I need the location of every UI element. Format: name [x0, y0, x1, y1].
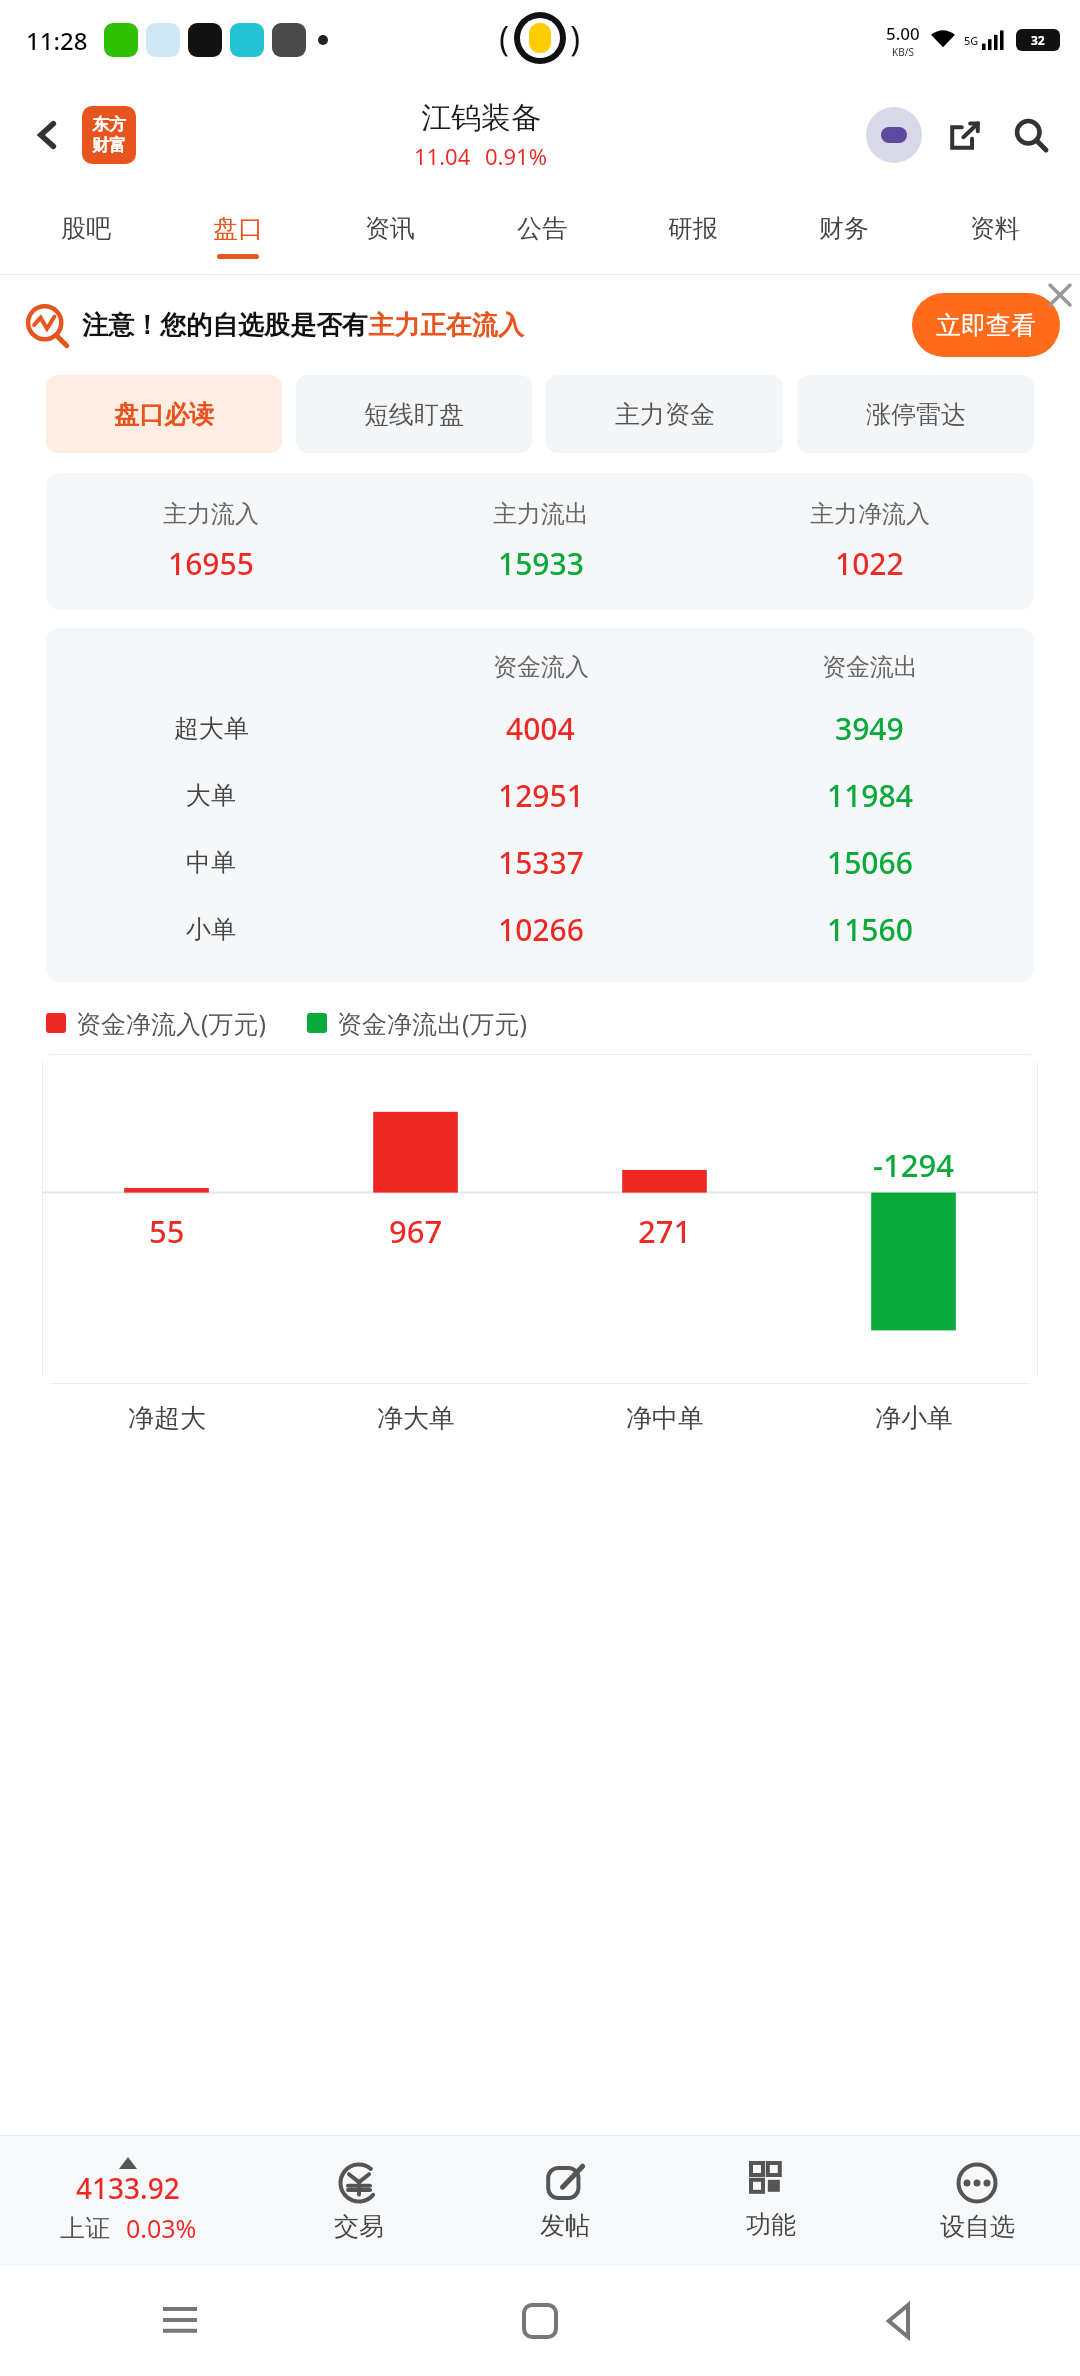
staticText: 271: [638, 1210, 692, 1252]
staticText: 5.00: [886, 22, 920, 45]
staticText: 净大单: [377, 1402, 455, 1435]
staticText: 发帖: [540, 2210, 590, 2241]
button[interactable]: Home: [360, 2266, 720, 2376]
staticText: 江钨装备: [421, 99, 541, 137]
staticText: 10266: [498, 909, 584, 950]
button[interactable]: 发帖: [462, 2136, 668, 2266]
staticText: 盘口: [213, 213, 263, 244]
staticText: 净小单: [875, 1402, 953, 1435]
staticText: 财富: [92, 135, 126, 156]
button[interactable]: 资金流入: [46, 652, 1034, 958]
staticText: 主力正在流入: [368, 309, 524, 342]
button[interactable]: 研报: [617, 190, 768, 274]
button[interactable]: Avatar: [866, 107, 922, 163]
staticText: 3949: [835, 708, 904, 749]
staticText: 主力流出: [493, 499, 589, 529]
staticText: 967: [389, 1210, 443, 1252]
staticText: 交易: [334, 2211, 384, 2242]
staticText: 立即查看: [936, 310, 1036, 341]
staticText: 小单: [186, 914, 236, 945]
staticText: 15933: [498, 543, 584, 584]
staticText: 上证: [60, 2213, 110, 2244]
button[interactable]: Search: [1006, 110, 1056, 160]
button[interactable]: Share: [940, 110, 990, 160]
button[interactable]: Back: [22, 109, 74, 161]
staticText: 超大单: [174, 713, 249, 744]
button[interactable]: Close: [1040, 275, 1080, 315]
staticText: 1022: [835, 543, 904, 584]
staticText: 11:28: [26, 24, 88, 57]
button[interactable]: 资讯: [314, 190, 466, 274]
staticText: 资金净流入(万元): [76, 1006, 267, 1040]
staticText: 资金净流出(万元): [337, 1006, 528, 1040]
button[interactable]: Recents: [0, 2266, 360, 2376]
button[interactable]: 股吧: [10, 190, 162, 274]
staticText: 研报: [668, 213, 718, 244]
button[interactable]: 功能: [668, 2136, 874, 2266]
staticText: 12951: [498, 775, 584, 816]
staticText: ): [570, 15, 581, 61]
staticText: KB/S: [892, 45, 914, 59]
staticText: 资料: [970, 213, 1020, 244]
staticText: 0.03%: [126, 2211, 197, 2245]
staticText: 净超大: [128, 1402, 206, 1435]
button[interactable]: 4133.92: [0, 2136, 256, 2266]
staticText: 股吧: [61, 213, 111, 244]
staticText: 公告: [517, 213, 567, 244]
button[interactable]: 财务: [768, 190, 919, 274]
staticText: 中单: [186, 847, 236, 878]
button[interactable]: 盘口: [162, 190, 314, 274]
staticText: (: [499, 15, 510, 61]
button[interactable]: 涨停雷达: [797, 375, 1034, 453]
button[interactable]: 资料: [919, 190, 1070, 274]
staticText: 11560: [827, 909, 913, 950]
staticText: 设自选: [940, 2211, 1015, 2242]
staticText: 资讯: [365, 213, 415, 244]
staticText: 大单: [186, 780, 236, 811]
staticText: 功能: [746, 2209, 796, 2240]
button[interactable]: 立即查看: [912, 293, 1060, 357]
staticText: 4133.92: [76, 2169, 180, 2207]
staticText: 涨停雷达: [866, 399, 966, 430]
button[interactable]: 盘口必读: [46, 375, 282, 453]
staticText: 财务: [819, 213, 869, 244]
staticText: 主力流入: [163, 499, 259, 529]
staticText: 盘口必读: [114, 399, 214, 430]
staticText: 55: [149, 1210, 185, 1252]
staticText: -1294: [873, 1144, 954, 1186]
staticText: 主力资金: [615, 399, 715, 430]
button[interactable]: Back: [720, 2266, 1080, 2376]
staticText: 短线盯盘: [364, 399, 464, 430]
button[interactable]: 设自选: [874, 2136, 1080, 2266]
staticText: 4004: [506, 708, 575, 749]
staticText: 15066: [827, 842, 913, 883]
staticText: 资金流出: [822, 652, 918, 682]
staticText: 11984: [827, 775, 913, 816]
button[interactable]: 主力资金: [546, 375, 783, 453]
button[interactable]: 东方: [82, 106, 136, 164]
button[interactable]: 短线盯盘: [296, 375, 532, 453]
staticText: 东方: [92, 114, 126, 135]
button[interactable]: 交易: [256, 2136, 462, 2266]
staticText: 16955: [168, 543, 254, 584]
staticText: 资金流入: [493, 652, 589, 682]
staticText: 您的自选股是否有: [160, 309, 368, 342]
staticText: 11.04: [414, 141, 471, 171]
button[interactable]: 公告: [466, 190, 617, 274]
staticText: 主力净流入: [810, 499, 930, 529]
staticText: 5G: [964, 33, 979, 48]
staticText: 净中单: [626, 1402, 704, 1435]
button[interactable]: 主力流入: [46, 499, 1034, 584]
staticText: 32: [1031, 32, 1045, 48]
staticText: 0.91%: [485, 141, 547, 171]
staticText: 15337: [498, 842, 584, 883]
staticText: 注意！: [82, 309, 160, 342]
